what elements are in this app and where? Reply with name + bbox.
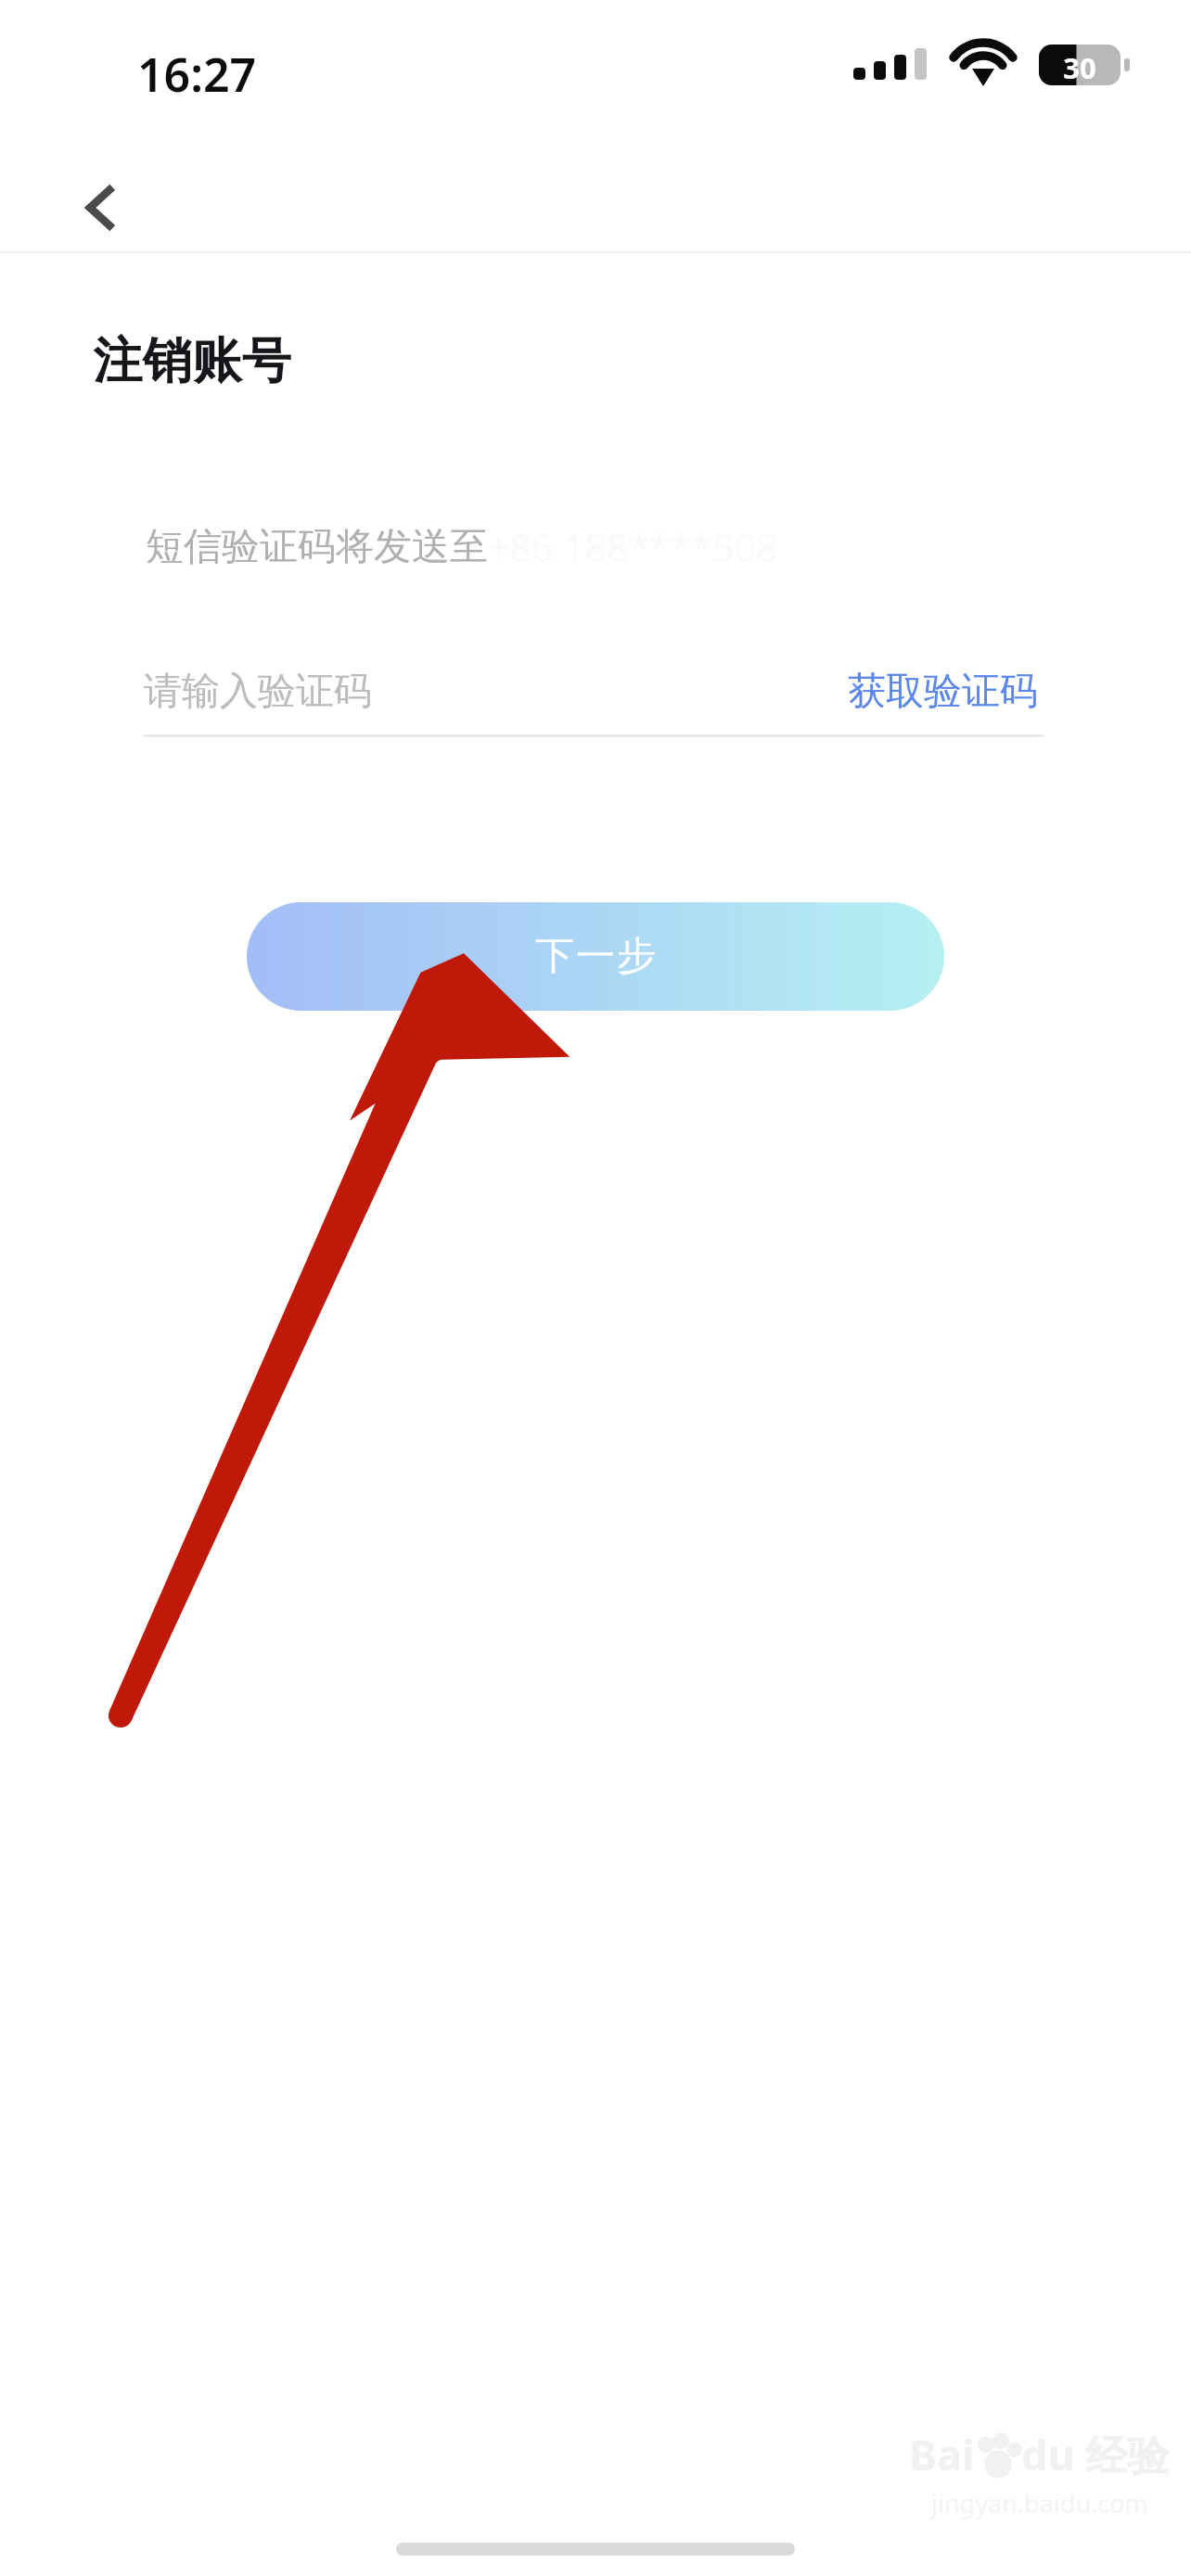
staticText: Bai [909, 2426, 975, 2482]
button[interactable]: 获取验证码 [842, 658, 1044, 725]
staticText: 16:27 [137, 43, 257, 106]
staticText: 短信验证码将发送至 [146, 523, 488, 571]
staticText: jingyan.baidu.com [931, 2486, 1148, 2520]
staticText: du 经验 [1021, 2426, 1170, 2482]
staticText: 获取验证码 [848, 668, 1038, 716]
staticText: 请输入验证码 [144, 668, 372, 716]
staticText: 注销账号 [93, 330, 291, 392]
staticText: 30 [1039, 48, 1121, 87]
button[interactable]: Back [58, 165, 143, 250]
button[interactable]: 请输入验证码 [144, 647, 1044, 736]
button[interactable]: 下一步 [247, 902, 944, 1011]
staticText: 下一步 [534, 932, 657, 981]
